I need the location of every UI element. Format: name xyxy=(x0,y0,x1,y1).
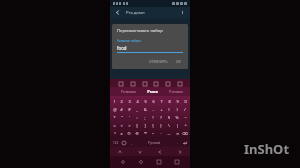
button[interactable]: ) xyxy=(173,105,181,113)
button[interactable]: Theme xyxy=(141,80,148,87)
button[interactable]: Assistant xyxy=(118,157,128,167)
button[interactable]: \ xyxy=(165,121,173,129)
button[interactable]: Back xyxy=(113,8,122,17)
button[interactable]: ' xyxy=(125,113,133,121)
button[interactable]: ? xyxy=(157,113,165,121)
staticText: ? xyxy=(160,115,162,120)
staticText: Название набора xyxy=(117,39,141,43)
button[interactable]: 8 xyxy=(165,97,173,105)
button[interactable]: Down xyxy=(130,147,150,156)
staticText: 4 xyxy=(136,99,139,104)
button[interactable]: & xyxy=(141,105,149,113)
button[interactable]: ₽ xyxy=(125,105,133,113)
button[interactable]: # xyxy=(118,105,125,113)
button[interactable]: = xyxy=(111,121,118,129)
button[interactable]: + xyxy=(157,105,165,113)
button[interactable]: 123 xyxy=(111,138,120,147)
staticText: … xyxy=(167,131,171,136)
button[interactable]: / xyxy=(181,105,189,113)
button[interactable]: * xyxy=(111,113,118,121)
button[interactable]: } xyxy=(157,121,165,129)
button[interactable]: Clipboard xyxy=(117,80,124,87)
staticText: / xyxy=(184,107,186,112)
button[interactable]: > xyxy=(125,121,133,129)
button[interactable]: Mic xyxy=(176,80,183,87)
button[interactable]: Home xyxy=(154,157,164,167)
button[interactable]: Left xyxy=(150,147,170,156)
button[interactable]: 3 xyxy=(125,97,133,105)
button[interactable]: 5 xyxy=(141,97,149,105)
button[interactable]: ~ xyxy=(181,113,189,121)
button[interactable]: § xyxy=(165,113,173,121)
button[interactable]: ⌫ xyxy=(181,129,189,137)
button[interactable]: . xyxy=(174,138,180,147)
staticText: < xyxy=(120,123,123,128)
button[interactable]: _ xyxy=(133,105,141,113)
button[interactable]: ! xyxy=(149,113,157,121)
button[interactable]: 9 xyxy=(173,97,181,105)
button[interactable]: Enter xyxy=(180,138,189,147)
button[interactable]: ( xyxy=(165,105,173,113)
button[interactable]: % xyxy=(173,113,181,121)
button[interactable]: 1 xyxy=(111,97,118,105)
button[interactable]: | xyxy=(173,121,181,129)
staticText: • xyxy=(152,131,154,136)
staticText: ™ xyxy=(144,131,147,136)
button[interactable]: · xyxy=(157,129,165,137)
button[interactable]: , xyxy=(128,138,134,147)
button[interactable]: 6 xyxy=(149,97,157,105)
staticText: Ртх.домн xyxy=(126,10,145,16)
button[interactable]: Рыка xyxy=(140,87,164,96)
staticText: Рыжково xyxy=(121,89,136,94)
button[interactable]: ™ xyxy=(141,129,149,137)
staticText: 7 xyxy=(160,99,163,104)
button[interactable]: ^ xyxy=(181,121,189,129)
button[interactable]: ° xyxy=(111,129,118,137)
button[interactable]: Рисовка xyxy=(164,87,188,96)
button[interactable]: Рыжково xyxy=(116,87,140,96)
button[interactable]: ОТМЕНИТЬ xyxy=(147,58,170,65)
button[interactable]: Text edit xyxy=(152,80,159,87)
staticText: · xyxy=(160,131,162,136)
button[interactable]: ; xyxy=(141,113,149,121)
button[interactable]: • xyxy=(149,129,157,137)
button[interactable]: ® xyxy=(133,129,141,137)
button[interactable]: Русский xyxy=(135,139,173,146)
button[interactable]: ] xyxy=(141,121,149,129)
staticText: * xyxy=(113,115,116,120)
button[interactable]: : xyxy=(133,113,141,121)
button[interactable]: Sticker xyxy=(129,80,136,87)
button[interactable]: Recents xyxy=(172,157,182,167)
button[interactable]: ¤ xyxy=(173,129,181,137)
button[interactable]: Right xyxy=(170,147,190,156)
staticText: Русский xyxy=(148,141,161,145)
staticText: ОТМЕНИТЬ xyxy=(149,59,168,64)
button[interactable]: More options xyxy=(178,8,187,17)
button[interactable]: Settings xyxy=(164,80,171,87)
button[interactable]: 0 xyxy=(181,97,189,105)
button[interactable]: ± xyxy=(118,129,125,137)
button[interactable]: … xyxy=(165,129,173,137)
button[interactable]: Up xyxy=(110,147,130,156)
staticText: - xyxy=(152,107,154,112)
button[interactable]: © xyxy=(125,129,133,137)
button[interactable]: Emoji xyxy=(120,138,128,147)
button[interactable]: [ xyxy=(133,121,141,129)
button[interactable]: { xyxy=(149,121,157,129)
staticText: © xyxy=(127,131,131,136)
button[interactable]: < xyxy=(118,121,125,129)
button[interactable]: 4 xyxy=(133,97,141,105)
staticText: 5 xyxy=(144,99,147,104)
button[interactable]: ОК xyxy=(174,58,183,65)
button[interactable]: 7 xyxy=(157,97,165,105)
button[interactable]: @ xyxy=(111,105,118,113)
button[interactable]: " xyxy=(118,113,125,121)
button[interactable]: 2 xyxy=(118,97,125,105)
button[interactable]: Especial foren xyxy=(110,50,190,66)
button[interactable]: Back xyxy=(136,157,146,167)
staticText: 8 xyxy=(168,99,171,104)
staticText: 2 xyxy=(120,99,123,104)
button[interactable]: - xyxy=(149,105,157,113)
